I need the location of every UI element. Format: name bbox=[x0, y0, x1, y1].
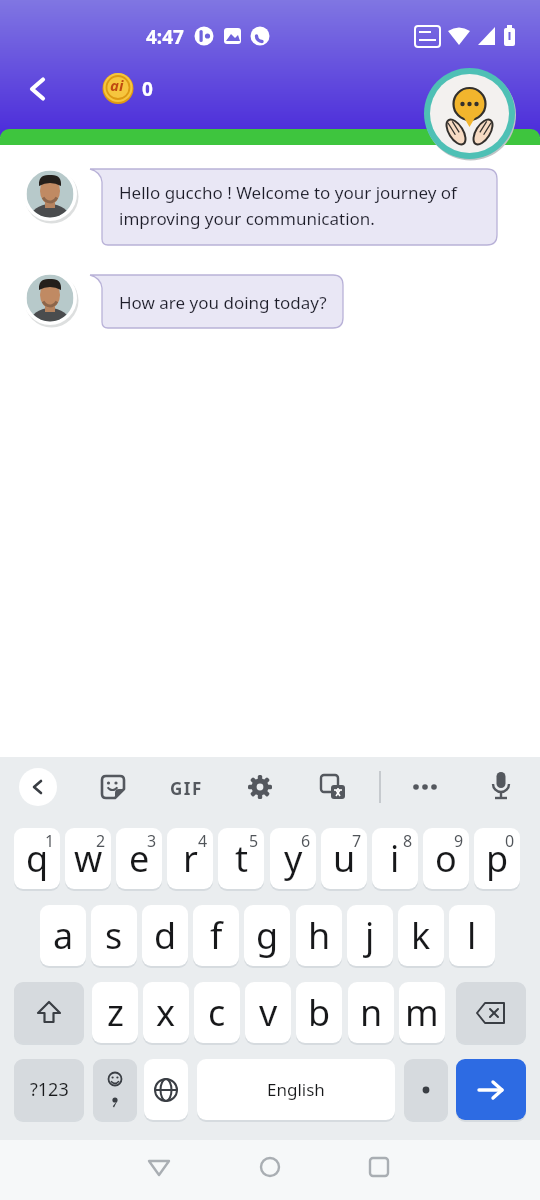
button[interactable]: ?123 bbox=[14, 1059, 84, 1120]
button[interactable] bbox=[99, 773, 127, 801]
button[interactable] bbox=[90, 274, 343, 328]
staticText: u bbox=[333, 834, 356, 883]
button[interactable]: h bbox=[296, 905, 342, 966]
staticText: w bbox=[74, 834, 103, 883]
button[interactable]: b bbox=[296, 982, 342, 1043]
staticText: z bbox=[107, 988, 124, 1037]
staticText: 3 bbox=[147, 830, 157, 852]
button[interactable] bbox=[14, 982, 84, 1043]
staticText: d bbox=[154, 911, 177, 960]
button[interactable] bbox=[424, 68, 515, 159]
staticText: 9 bbox=[454, 830, 464, 852]
button[interactable] bbox=[366, 1154, 392, 1180]
staticText: p bbox=[486, 834, 509, 883]
button[interactable] bbox=[90, 168, 497, 245]
button[interactable] bbox=[146, 1154, 172, 1180]
staticText: 6 bbox=[301, 830, 311, 852]
button[interactable]: w bbox=[65, 828, 111, 889]
button[interactable]: v bbox=[245, 982, 291, 1043]
staticText: ai bbox=[110, 75, 124, 95]
staticText: English bbox=[267, 1078, 325, 1101]
staticText: e bbox=[129, 834, 150, 883]
staticText: Hello guccho ! Welcome to your journey o… bbox=[119, 181, 457, 230]
staticText: g bbox=[256, 911, 279, 960]
button[interactable] bbox=[404, 1059, 448, 1120]
staticText: 2 bbox=[96, 830, 106, 852]
staticText: y bbox=[284, 834, 303, 883]
staticText: b bbox=[308, 988, 331, 1037]
button[interactable]: y bbox=[270, 828, 316, 889]
button[interactable]: i bbox=[372, 828, 418, 889]
staticText: t bbox=[235, 834, 248, 883]
button[interactable]: t bbox=[218, 828, 264, 889]
button[interactable] bbox=[93, 1059, 137, 1120]
staticText: c bbox=[208, 988, 226, 1037]
button[interactable]: m bbox=[399, 982, 445, 1043]
staticText: i bbox=[390, 834, 400, 883]
staticText: o bbox=[435, 834, 457, 883]
staticText: 5 bbox=[249, 830, 259, 852]
button[interactable] bbox=[16, 70, 56, 108]
button[interactable] bbox=[456, 982, 526, 1043]
button[interactable]: q bbox=[14, 828, 60, 889]
button[interactable]: e bbox=[116, 828, 162, 889]
staticText: x bbox=[156, 988, 176, 1037]
button[interactable]: s bbox=[91, 905, 137, 966]
button[interactable]: GIF bbox=[170, 777, 203, 800]
staticText: v bbox=[259, 988, 278, 1037]
staticText: f bbox=[210, 911, 223, 960]
staticText: r bbox=[183, 834, 198, 883]
staticText: s bbox=[105, 911, 123, 960]
button[interactable]: z bbox=[92, 982, 138, 1043]
button[interactable] bbox=[456, 1059, 526, 1120]
button[interactable]: x bbox=[143, 982, 189, 1043]
staticText: h bbox=[308, 911, 331, 960]
staticText: 0 bbox=[505, 830, 515, 852]
staticText: 4 bbox=[198, 830, 208, 852]
staticText: 7 bbox=[352, 830, 362, 852]
button[interactable]: o bbox=[423, 828, 469, 889]
button[interactable] bbox=[319, 773, 347, 801]
staticText: ?123 bbox=[30, 1077, 69, 1102]
staticText: n bbox=[360, 988, 383, 1037]
button[interactable]: f bbox=[193, 905, 239, 966]
staticText: q bbox=[26, 834, 49, 883]
button[interactable] bbox=[246, 773, 274, 801]
button[interactable]: a bbox=[40, 905, 86, 966]
staticText: How are you doing today? bbox=[119, 291, 327, 314]
button[interactable]: g bbox=[244, 905, 290, 966]
staticText: 0 bbox=[142, 76, 153, 102]
button[interactable]: l bbox=[449, 905, 495, 966]
button[interactable]: p bbox=[474, 828, 520, 889]
button[interactable] bbox=[144, 1059, 188, 1120]
staticText: j bbox=[365, 911, 375, 960]
staticText: m bbox=[405, 988, 439, 1037]
button[interactable]: n bbox=[348, 982, 394, 1043]
button[interactable] bbox=[257, 1154, 283, 1180]
button[interactable]: u bbox=[321, 828, 367, 889]
button[interactable]: ai bbox=[100, 70, 180, 107]
button[interactable]: d bbox=[142, 905, 188, 966]
button[interactable]: r bbox=[167, 828, 213, 889]
staticText: l bbox=[467, 911, 477, 960]
button[interactable]: c bbox=[194, 982, 240, 1043]
staticText: a bbox=[53, 911, 74, 960]
staticText: 4:47 bbox=[146, 24, 184, 50]
button[interactable]: English bbox=[197, 1059, 395, 1120]
button[interactable] bbox=[405, 773, 445, 801]
button[interactable] bbox=[19, 768, 57, 806]
staticText: 8 bbox=[403, 830, 413, 852]
staticText: 1 bbox=[45, 830, 55, 852]
button[interactable]: k bbox=[398, 905, 444, 966]
button[interactable] bbox=[487, 770, 515, 804]
staticText: k bbox=[411, 911, 431, 960]
button[interactable]: j bbox=[347, 905, 393, 966]
